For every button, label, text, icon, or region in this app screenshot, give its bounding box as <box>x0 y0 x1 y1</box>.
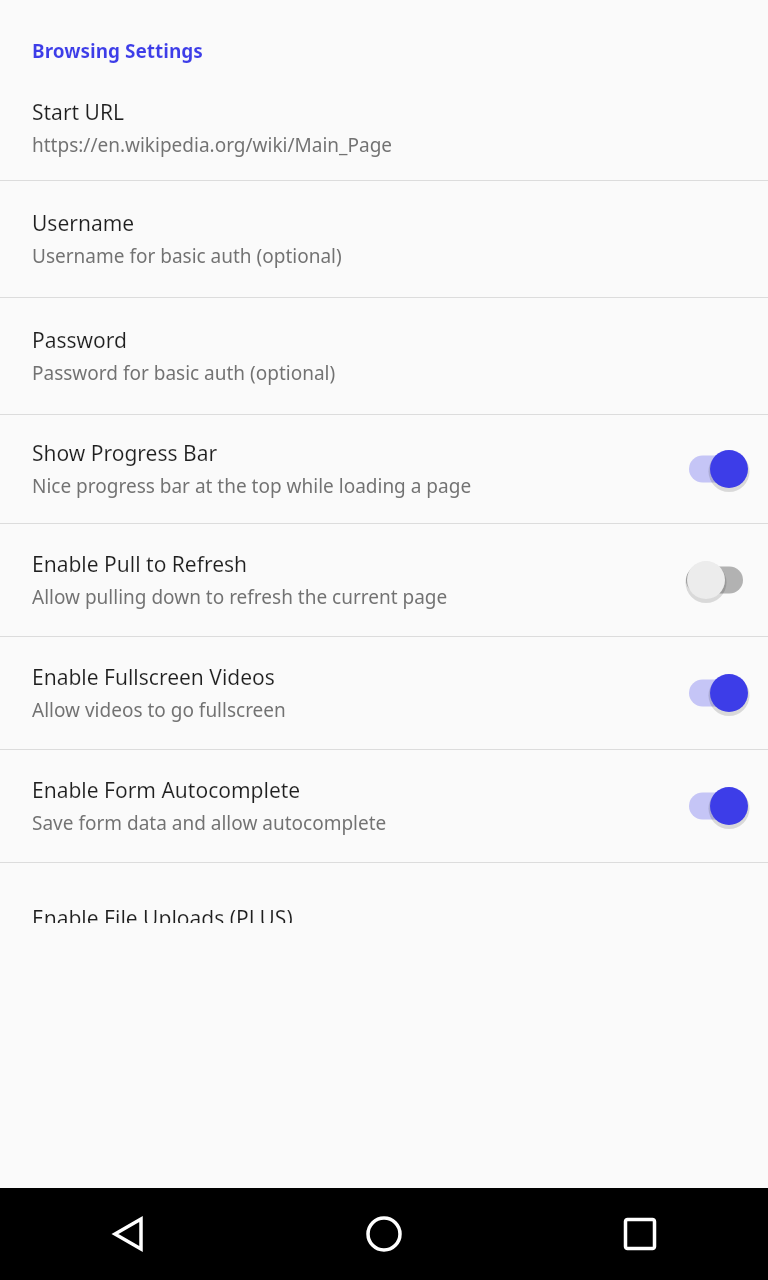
staticText: Password for basic auth (optional) <box>32 360 336 386</box>
staticText: Allow pulling down to refresh the curren… <box>32 584 448 610</box>
button[interactable]: Show Progress Bar <box>0 415 768 523</box>
button[interactable]: Home <box>256 1188 512 1280</box>
button[interactable]: Enable Pull to Refresh <box>0 524 768 636</box>
staticText: Username <box>32 209 135 238</box>
button[interactable]: Off <box>686 560 744 600</box>
button[interactable]: On <box>686 786 744 826</box>
button[interactable]: Start URL <box>0 84 768 180</box>
button[interactable]: Enable Fullscreen Videos <box>0 637 768 749</box>
staticText: Enable Pull to Refresh <box>32 550 248 579</box>
button[interactable]: Enable File Uploads (PLUS) <box>0 863 768 923</box>
staticText: Nice progress bar at the top while loadi… <box>32 473 602 499</box>
button[interactable]: Recent apps <box>512 1188 768 1280</box>
staticText: Browsing Settings <box>32 38 203 64</box>
staticText: Enable Fullscreen Videos <box>32 663 275 692</box>
button[interactable]: Password <box>0 298 768 414</box>
staticText: Enable Form Autocomplete <box>32 776 301 805</box>
staticText: https://en.wikipedia.org/wiki/Main_Page <box>32 132 393 158</box>
button[interactable]: On <box>686 449 744 489</box>
button[interactable]: Back <box>0 1188 256 1280</box>
staticText: Save form data and allow autocomplete <box>32 810 387 836</box>
staticText: Allow videos to go fullscreen <box>32 697 286 723</box>
button[interactable]: Enable Form Autocomplete <box>0 750 768 862</box>
staticText: Username for basic auth (optional) <box>32 243 342 269</box>
staticText: Start URL <box>32 98 125 127</box>
button[interactable]: On <box>686 673 744 713</box>
staticText: Enable File Uploads (PLUS) <box>32 904 293 923</box>
staticText: Show Progress Bar <box>32 439 218 468</box>
button[interactable]: Username <box>0 181 768 297</box>
staticText: Password <box>32 326 127 355</box>
